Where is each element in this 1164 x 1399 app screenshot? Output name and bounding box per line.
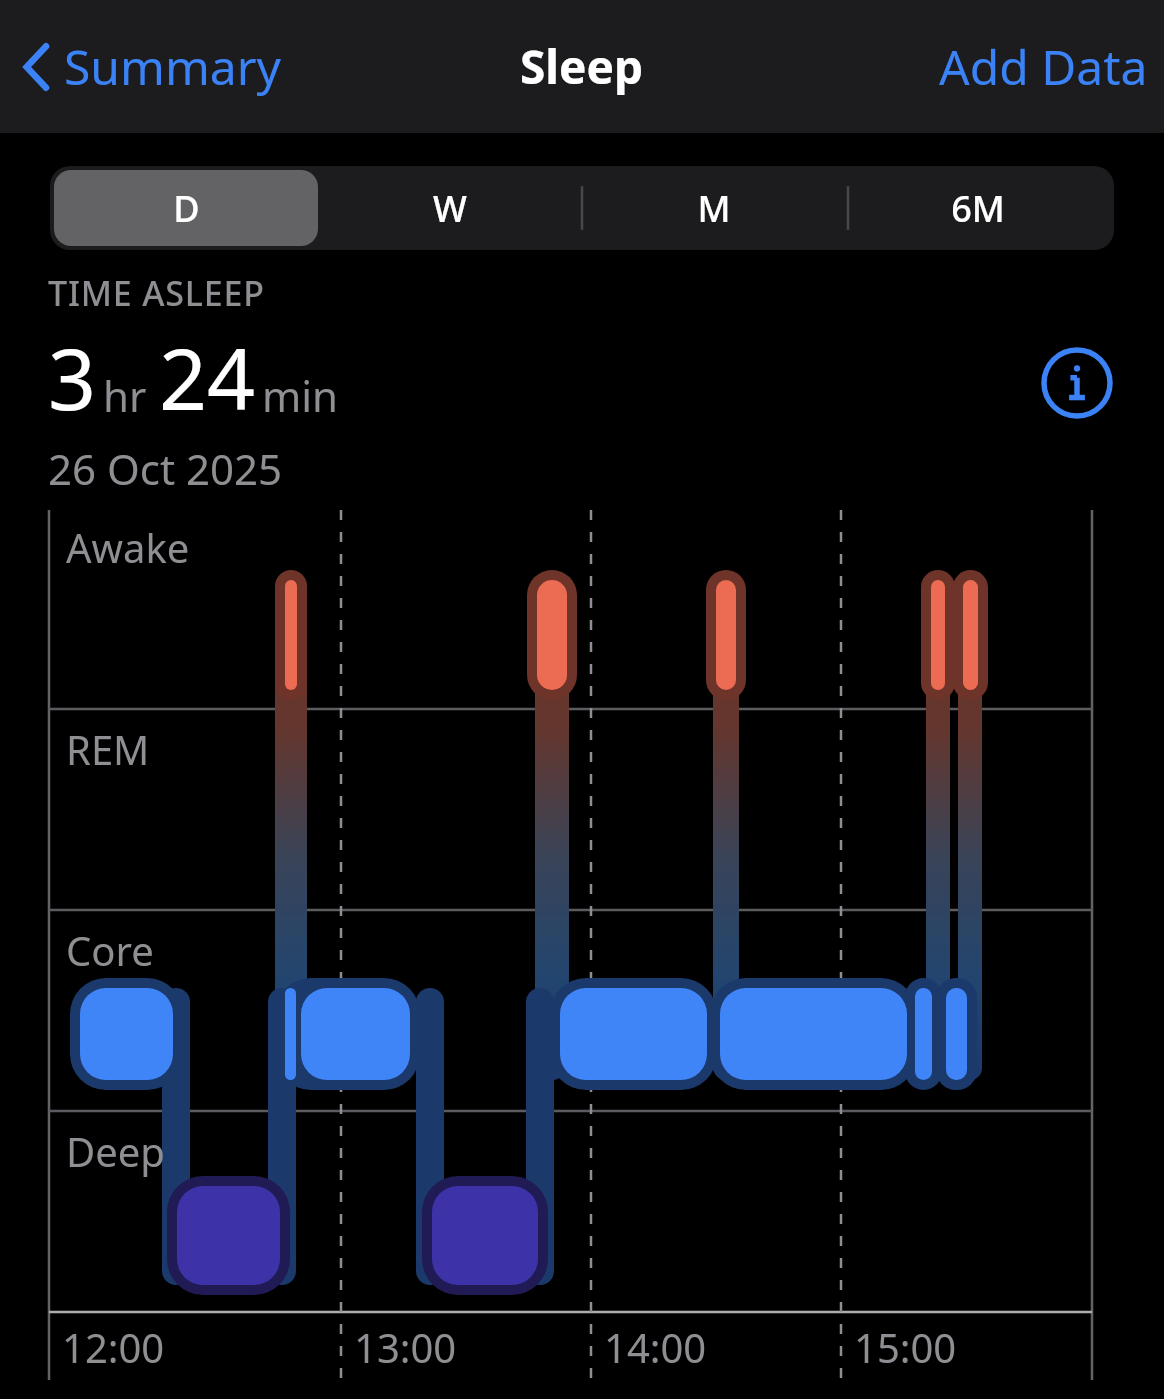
button[interactable]: 6M: [846, 170, 1110, 246]
button[interactable]: D: [54, 170, 318, 246]
staticText: 3: [48, 320, 97, 434]
staticText: Core: [66, 923, 154, 977]
button[interactable]: About sleep stages: [1041, 347, 1113, 419]
staticText: min: [262, 367, 339, 424]
staticText: 14:00: [604, 1320, 707, 1374]
button[interactable]: Add Data: [939, 34, 1148, 99]
staticText: W: [433, 184, 467, 233]
staticText: TIME ASLEEP: [48, 270, 265, 316]
staticText: 24: [159, 320, 256, 434]
staticText: M: [697, 184, 731, 233]
button[interactable]: W: [318, 170, 582, 246]
staticText: Add Data: [939, 34, 1148, 99]
staticText: hr: [103, 367, 147, 424]
staticText: Awake: [66, 520, 190, 574]
staticText: 12:00: [62, 1320, 165, 1374]
staticText: REM: [66, 722, 150, 776]
staticText: Summary: [64, 34, 282, 99]
staticText: Sleep: [520, 35, 644, 98]
button[interactable]: Summary: [18, 34, 282, 99]
staticText: Deep: [66, 1124, 165, 1178]
staticText: 13:00: [354, 1320, 457, 1374]
button[interactable]: M: [582, 170, 846, 246]
staticText: 15:00: [854, 1320, 957, 1374]
staticText: 26 Oct 2025: [48, 440, 283, 497]
staticText: 6M: [951, 184, 1005, 233]
staticText: D: [173, 184, 200, 233]
